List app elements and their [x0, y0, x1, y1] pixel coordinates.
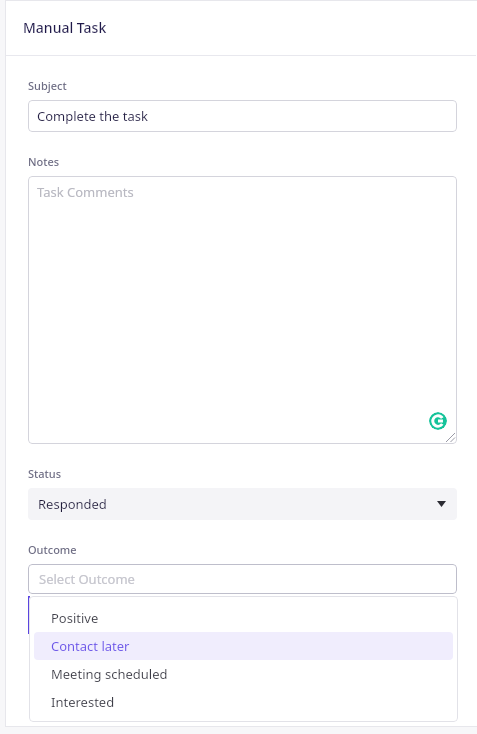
staticText: Meeting scheduled — [51, 665, 168, 683]
staticText: Responded — [38, 495, 107, 513]
staticText: Select Outcome — [39, 570, 135, 588]
staticText: Complete the task — [37, 107, 148, 125]
button[interactable]: Responded — [28, 488, 457, 520]
staticText: Manual Task — [23, 18, 107, 37]
staticText: Task Comments — [37, 183, 134, 201]
button[interactable]: Select Outcome — [28, 564, 457, 594]
staticText: Notes — [28, 154, 60, 169]
staticText: Contact later — [51, 637, 130, 655]
staticText: Interested — [51, 693, 115, 711]
staticText: Outcome — [28, 542, 77, 557]
staticText: Subject — [28, 78, 67, 93]
button[interactable]: Grammarly — [429, 412, 447, 430]
staticText: Positive — [51, 609, 99, 627]
button[interactable]: Positive — [34, 604, 453, 632]
staticText: Status — [28, 466, 62, 481]
button[interactable]: Task Comments — [28, 176, 457, 444]
button[interactable]: Meeting scheduled — [34, 660, 453, 688]
button[interactable]: Interested — [34, 688, 453, 716]
button[interactable]: Complete the task — [28, 100, 457, 132]
button[interactable]: Contact later — [34, 632, 453, 660]
